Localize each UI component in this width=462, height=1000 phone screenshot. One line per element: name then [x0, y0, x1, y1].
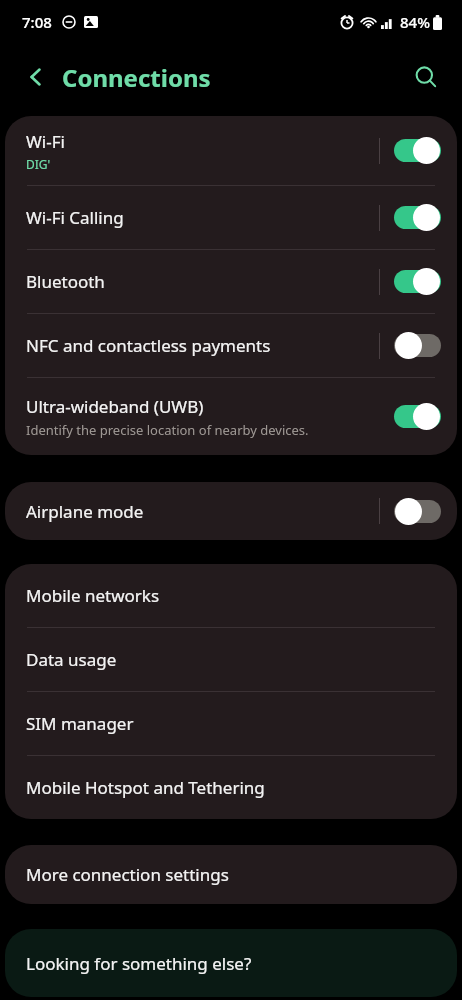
- staticText: Connections: [62, 61, 211, 94]
- staticText: Mobile networks: [26, 584, 160, 607]
- button[interactable]: Data usage: [5, 628, 457, 691]
- staticText: 84%: [400, 12, 430, 32]
- staticText: Looking for something else?: [26, 952, 252, 975]
- button[interactable]: Search: [402, 53, 450, 101]
- staticText: Mobile Hotspot and Tethering: [26, 776, 265, 799]
- button[interactable]: On: [394, 204, 441, 231]
- staticText: NFC and contactless payments: [26, 334, 271, 357]
- button[interactable]: Off: [394, 498, 441, 525]
- staticText: Wi-Fi Calling: [26, 206, 124, 229]
- button[interactable]: More connection settings: [5, 845, 457, 904]
- button[interactable]: Off: [394, 332, 441, 359]
- staticText: 7:08: [22, 12, 52, 32]
- button[interactable]: Back: [14, 55, 58, 99]
- button[interactable]: Mobile Hotspot and Tethering: [5, 756, 457, 819]
- staticText: Ultra-wideband (UWB): [26, 395, 204, 418]
- button[interactable]: SIM manager: [5, 692, 457, 755]
- staticText: Bluetooth: [26, 270, 105, 293]
- staticText: Identify the precise location of nearby …: [26, 421, 309, 439]
- staticText: DIG': [26, 156, 51, 172]
- button[interactable]: Mobile networks: [5, 564, 457, 627]
- button[interactable]: Looking for something else?: [5, 929, 457, 997]
- button[interactable]: Ultra-wideband (UWB): [5, 378, 457, 455]
- staticText: More connection settings: [26, 863, 229, 886]
- button[interactable]: On: [394, 137, 441, 164]
- staticText: Data usage: [26, 648, 117, 671]
- staticText: SIM manager: [26, 712, 134, 735]
- button[interactable]: On: [394, 403, 441, 430]
- button[interactable]: On: [394, 268, 441, 295]
- button[interactable]: Wi-Fi: [5, 116, 457, 185]
- button[interactable]: Wi-Fi Calling: [5, 186, 457, 249]
- staticText: Wi-Fi: [26, 130, 65, 153]
- button[interactable]: NFC and contactless payments: [5, 314, 457, 377]
- button[interactable]: Airplane mode: [5, 482, 457, 540]
- staticText: Airplane mode: [26, 500, 144, 523]
- button[interactable]: Bluetooth: [5, 250, 457, 313]
